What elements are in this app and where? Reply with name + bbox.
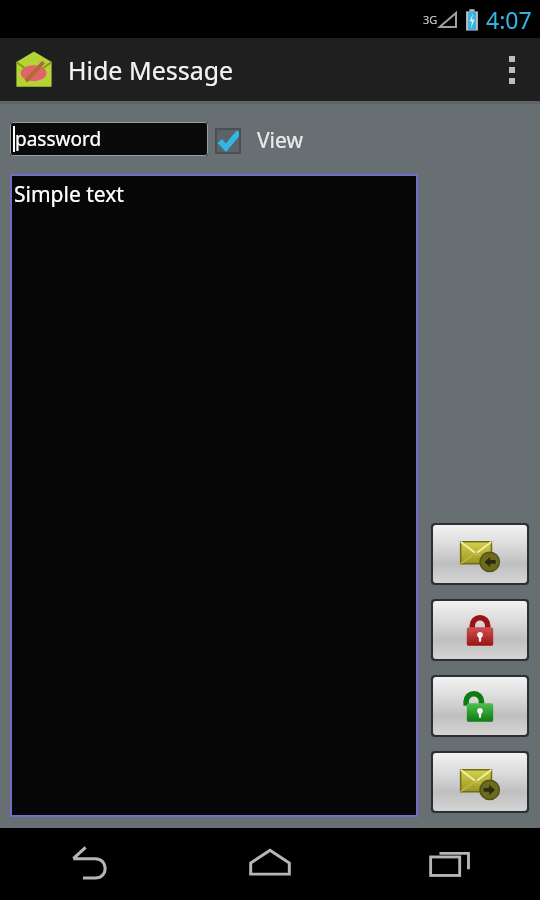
- button[interactable]: Send message: [433, 753, 527, 811]
- button[interactable]: Home: [180, 828, 360, 900]
- button[interactable]: Decrypt: [433, 677, 527, 735]
- button[interactable]: More options: [484, 38, 540, 101]
- button[interactable]: View: [215, 126, 303, 155]
- staticText: View: [257, 126, 303, 155]
- staticText: 3G: [423, 12, 438, 27]
- button[interactable]: Back: [0, 828, 180, 900]
- button[interactable]: Recent apps: [360, 828, 540, 900]
- staticText: Simple text: [14, 180, 124, 209]
- button[interactable]: Receive message: [433, 525, 527, 583]
- staticText: Hide Message: [68, 53, 234, 87]
- staticText: password: [15, 126, 102, 152]
- button[interactable]: Encrypt: [433, 601, 527, 659]
- staticText: 4:07: [486, 4, 532, 35]
- button[interactable]: Simple text: [10, 174, 418, 817]
- button[interactable]: password: [10, 122, 208, 156]
